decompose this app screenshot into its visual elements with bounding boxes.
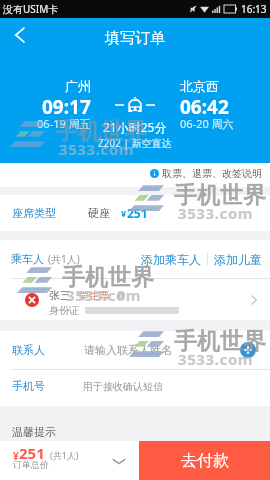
staticText: 3533.com <box>59 139 135 159</box>
staticText: 添加乘车人 <box>141 252 201 267</box>
staticText: 3533.com <box>66 285 142 305</box>
staticText: 取票、退票、改签说明 <box>162 167 262 180</box>
staticText: 3533.com <box>178 203 254 223</box>
button[interactable]: 添加儿童 <box>213 246 263 273</box>
staticText: 251 <box>127 205 148 221</box>
staticText: 06:42 <box>180 94 229 120</box>
staticText: 张三 <box>49 288 71 302</box>
staticText: 订单总价 <box>13 459 49 470</box>
staticText: 用于接收确认短信 <box>83 380 163 393</box>
staticText: 填写订单 <box>105 29 165 48</box>
staticText: ¥ <box>13 449 19 463</box>
staticText: 座席类型 <box>12 206 56 220</box>
staticText: 手机世界 <box>55 117 147 146</box>
staticText: 去付款 <box>181 451 229 471</box>
staticText: 广州 <box>65 78 91 94</box>
staticText: (共1人) <box>48 252 80 266</box>
button[interactable]: 取票、退票、改签说明 <box>0 163 270 187</box>
staticText: 手机世界 <box>62 263 154 292</box>
staticText: 09:17 <box>42 94 91 120</box>
staticText: 请输入联系人姓名 <box>84 343 172 357</box>
staticText: 21小时25分 <box>103 119 167 135</box>
button[interactable]: 张三 <box>0 279 270 320</box>
button[interactable]: 座席类型 <box>0 195 270 231</box>
staticText: 手机世界 <box>174 181 266 210</box>
staticText: 251 <box>19 443 45 463</box>
staticText: 手机号 <box>12 379 45 393</box>
staticText: 硬座 <box>88 206 110 220</box>
button[interactable]: Add contact <box>240 342 256 358</box>
staticText: 3533.com <box>178 349 254 369</box>
staticText: 16:13 <box>241 2 267 16</box>
staticText: 添加儿童 <box>214 252 262 267</box>
staticText: 乘车人 <box>11 252 44 266</box>
staticText: 身份证 <box>49 304 79 317</box>
button[interactable]: 去付款 <box>139 441 270 480</box>
staticText: 06-20 周六 <box>180 116 234 131</box>
button[interactable]: 添加乘车人 <box>140 246 202 273</box>
staticText: 85 <box>227 5 234 13</box>
staticText: 温馨提示 <box>12 425 56 439</box>
button[interactable]: Expand price detail <box>110 452 128 470</box>
staticText: 06-19 周五 <box>37 116 91 131</box>
staticText: (共1人) <box>50 449 79 461</box>
staticText: 联系人 <box>12 343 45 357</box>
staticText: 手机世界 <box>174 327 266 356</box>
button[interactable]: Back <box>5 20 35 50</box>
staticText: Z202 | 新空直达 <box>98 136 172 150</box>
staticText: 学生票 <box>79 289 109 302</box>
staticText: 没有USIM卡 <box>3 2 59 16</box>
button[interactable]: 联系人 <box>0 331 270 369</box>
staticText: 北京西 <box>180 78 219 94</box>
button[interactable]: 手机号 <box>0 370 270 406</box>
staticText: ¥ <box>121 207 127 219</box>
